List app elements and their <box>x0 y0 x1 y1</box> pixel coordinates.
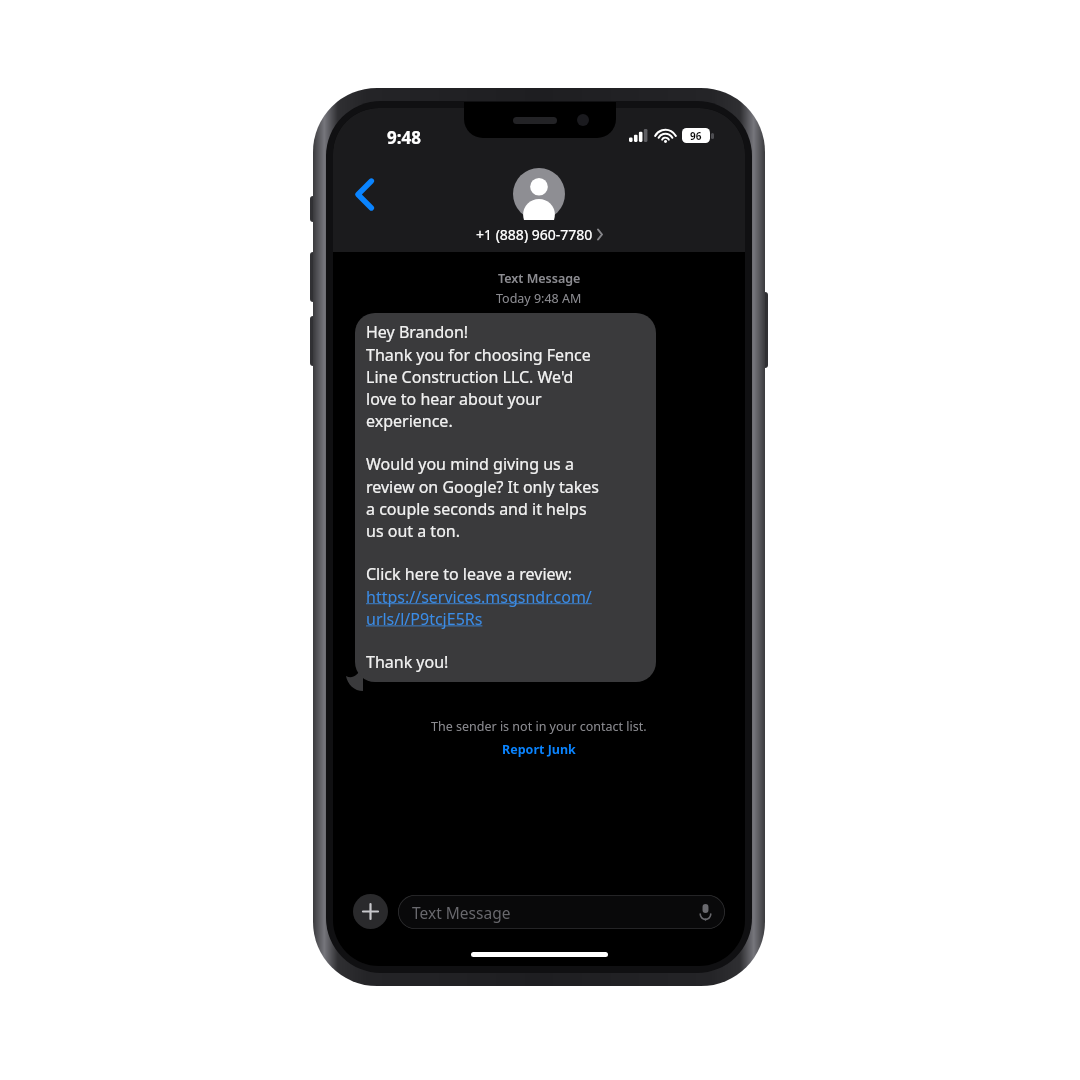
staticText: +1 (888) 960-7780 <box>476 225 593 244</box>
staticText: Report Junk <box>502 741 576 758</box>
button[interactable]: Hey Brandon! Thank you for choosing Fenc… <box>355 313 656 682</box>
button[interactable]: Back <box>341 172 389 216</box>
button[interactable]: +1 (888) 960-7780 <box>333 168 745 244</box>
staticText: Thank you! <box>366 651 449 673</box>
staticText: Hey Brandon! Thank you for choosing Fenc… <box>366 321 591 431</box>
staticText: Would you mind giving us a review on Goo… <box>366 453 599 541</box>
staticText: The sender is not in your contact list. <box>431 718 647 735</box>
staticText: 9:48 <box>387 126 421 149</box>
staticText: Text Message <box>412 902 511 923</box>
staticText: Today 9:48 AM <box>496 290 582 307</box>
staticText: Click here to leave a review: https://se… <box>366 563 592 629</box>
staticText: Text Message <box>498 270 581 287</box>
button[interactable]: Text Message <box>398 895 725 929</box>
button[interactable]: Report Junk <box>492 739 586 760</box>
button[interactable]: Add attachment <box>353 894 388 929</box>
button[interactable]: Dictate <box>694 901 716 923</box>
staticText: 96 <box>690 129 702 143</box>
